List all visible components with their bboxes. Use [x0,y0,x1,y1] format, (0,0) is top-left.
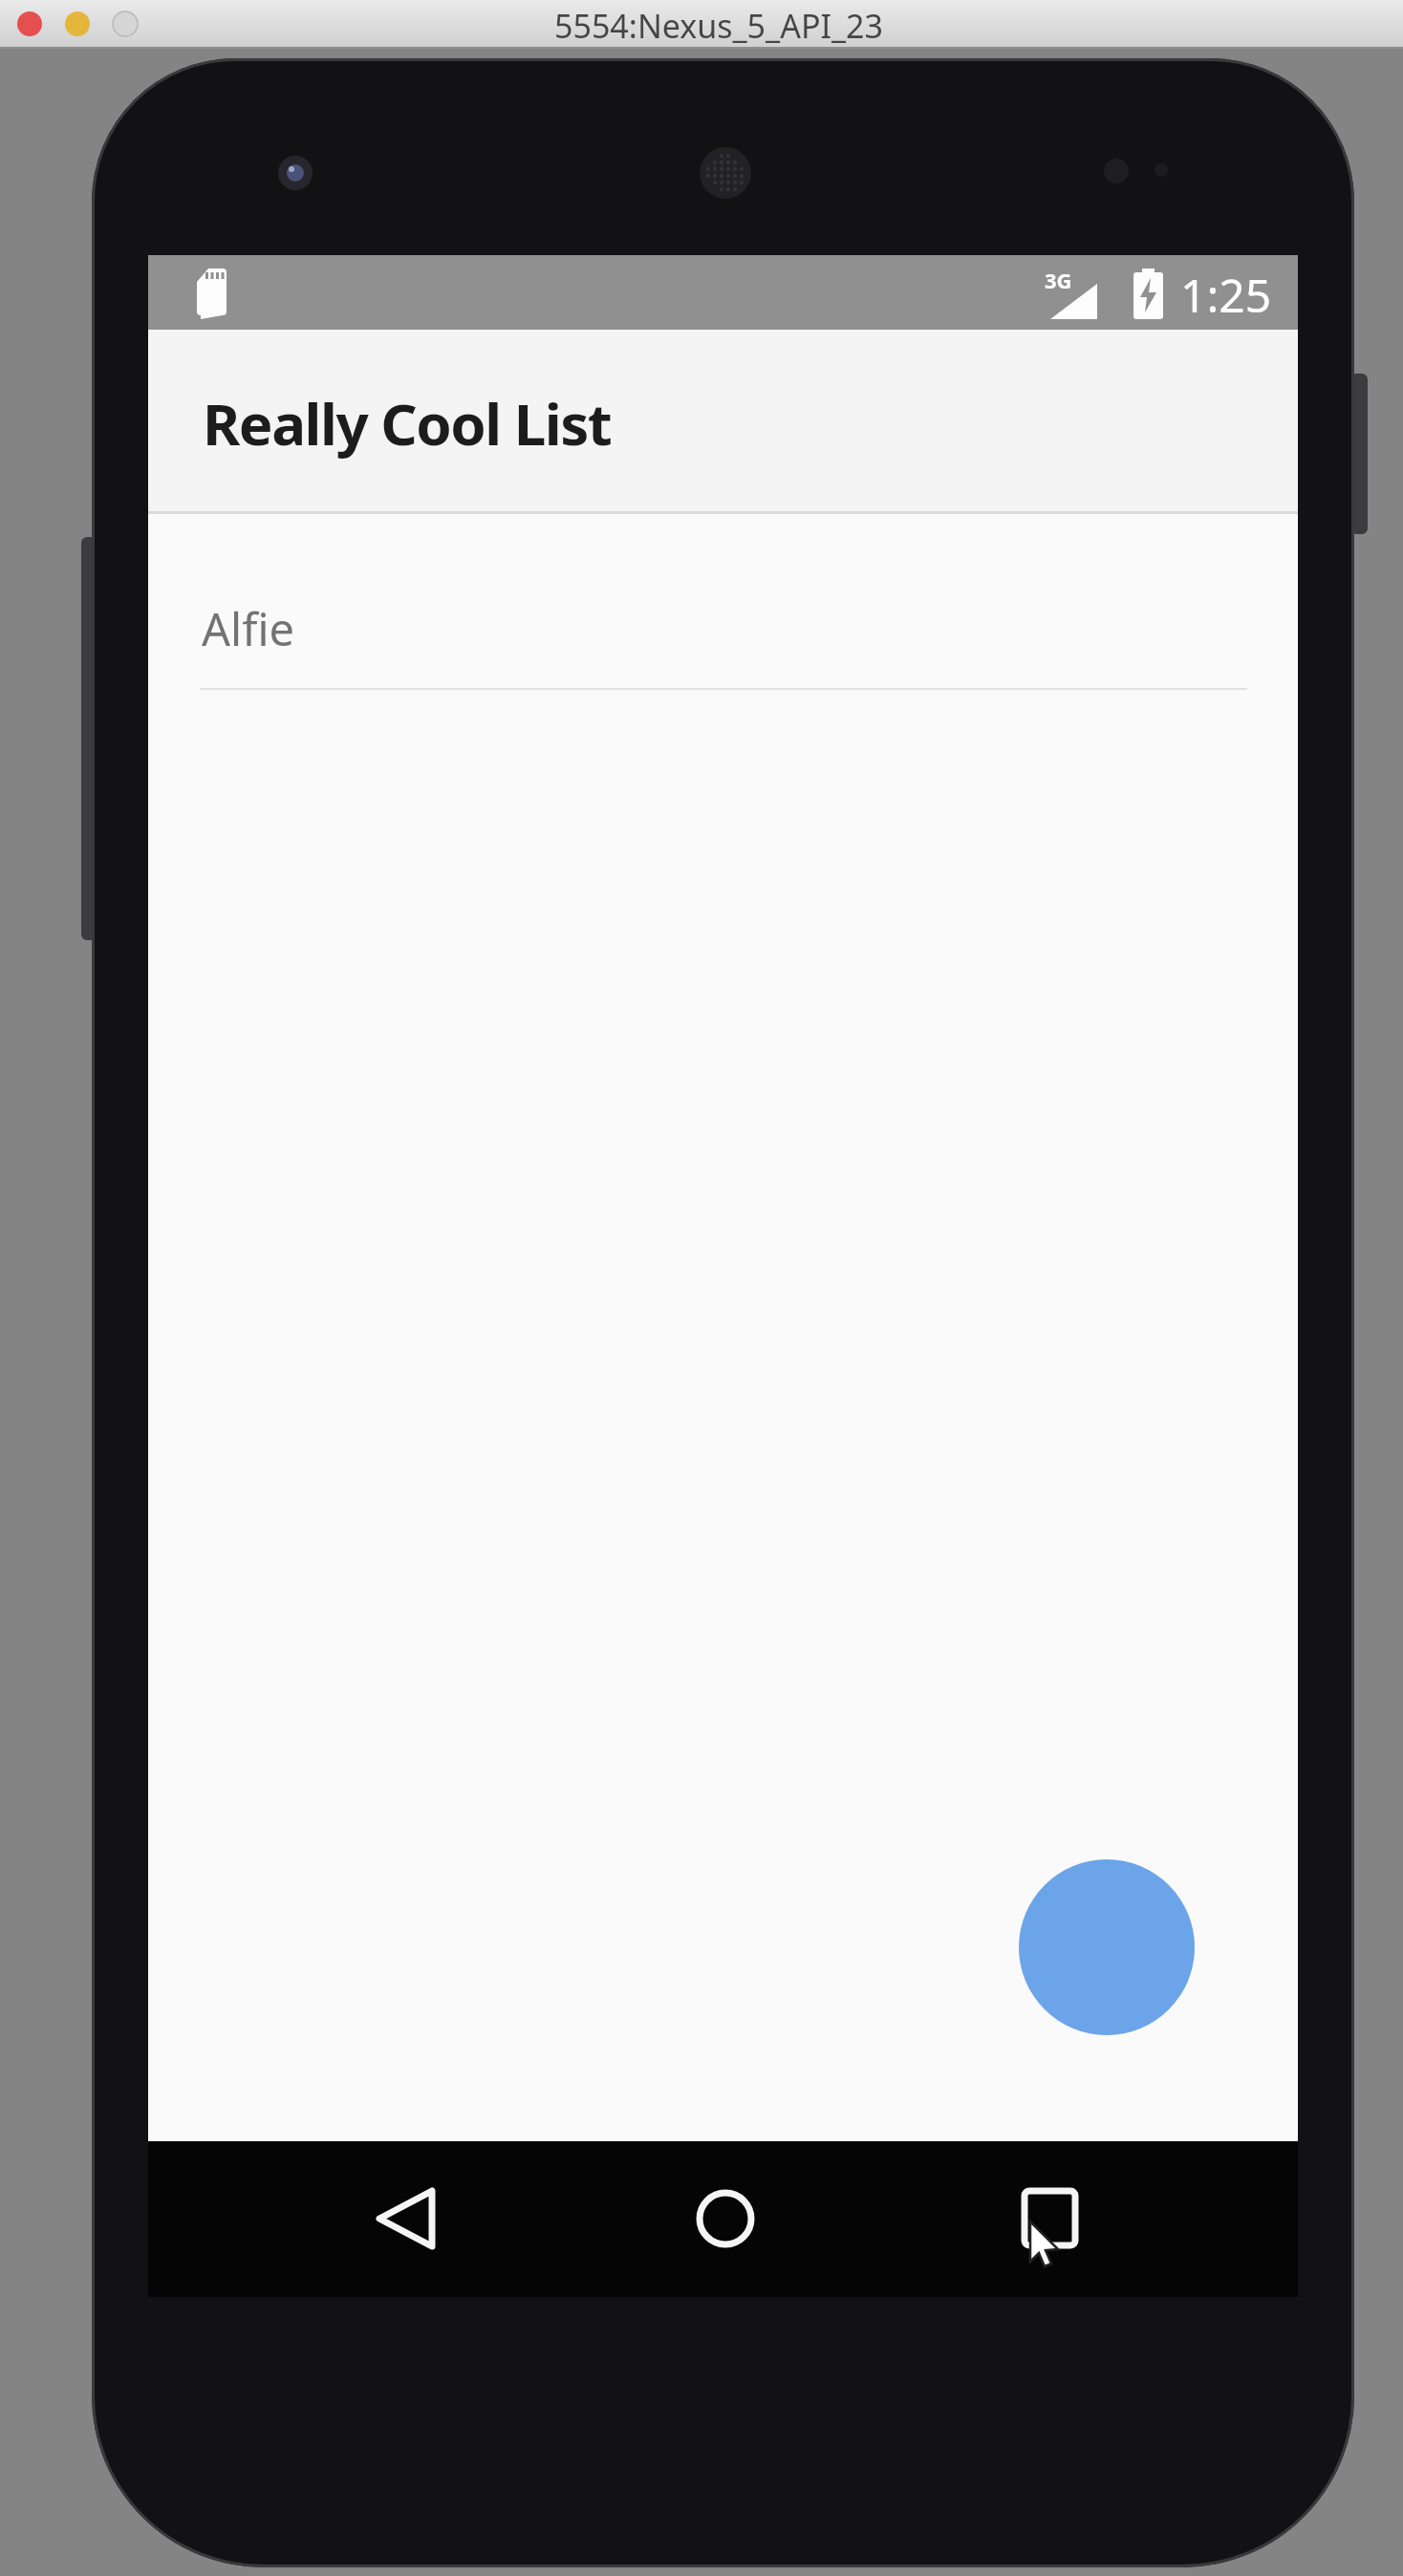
staticText: Really Cool List [203,384,612,462]
staticText: 5554:Nexus_5_API_23 [554,4,883,48]
button[interactable] [982,2160,1116,2278]
button[interactable] [658,2160,792,2278]
button[interactable] [1019,1859,1195,2035]
staticText: 3G [1045,266,1072,294]
staticText: Alfie [202,598,294,659]
button[interactable]: Alfie [148,514,1298,689]
button[interactable] [339,2160,473,2278]
staticText: 1:25 [1180,264,1272,326]
